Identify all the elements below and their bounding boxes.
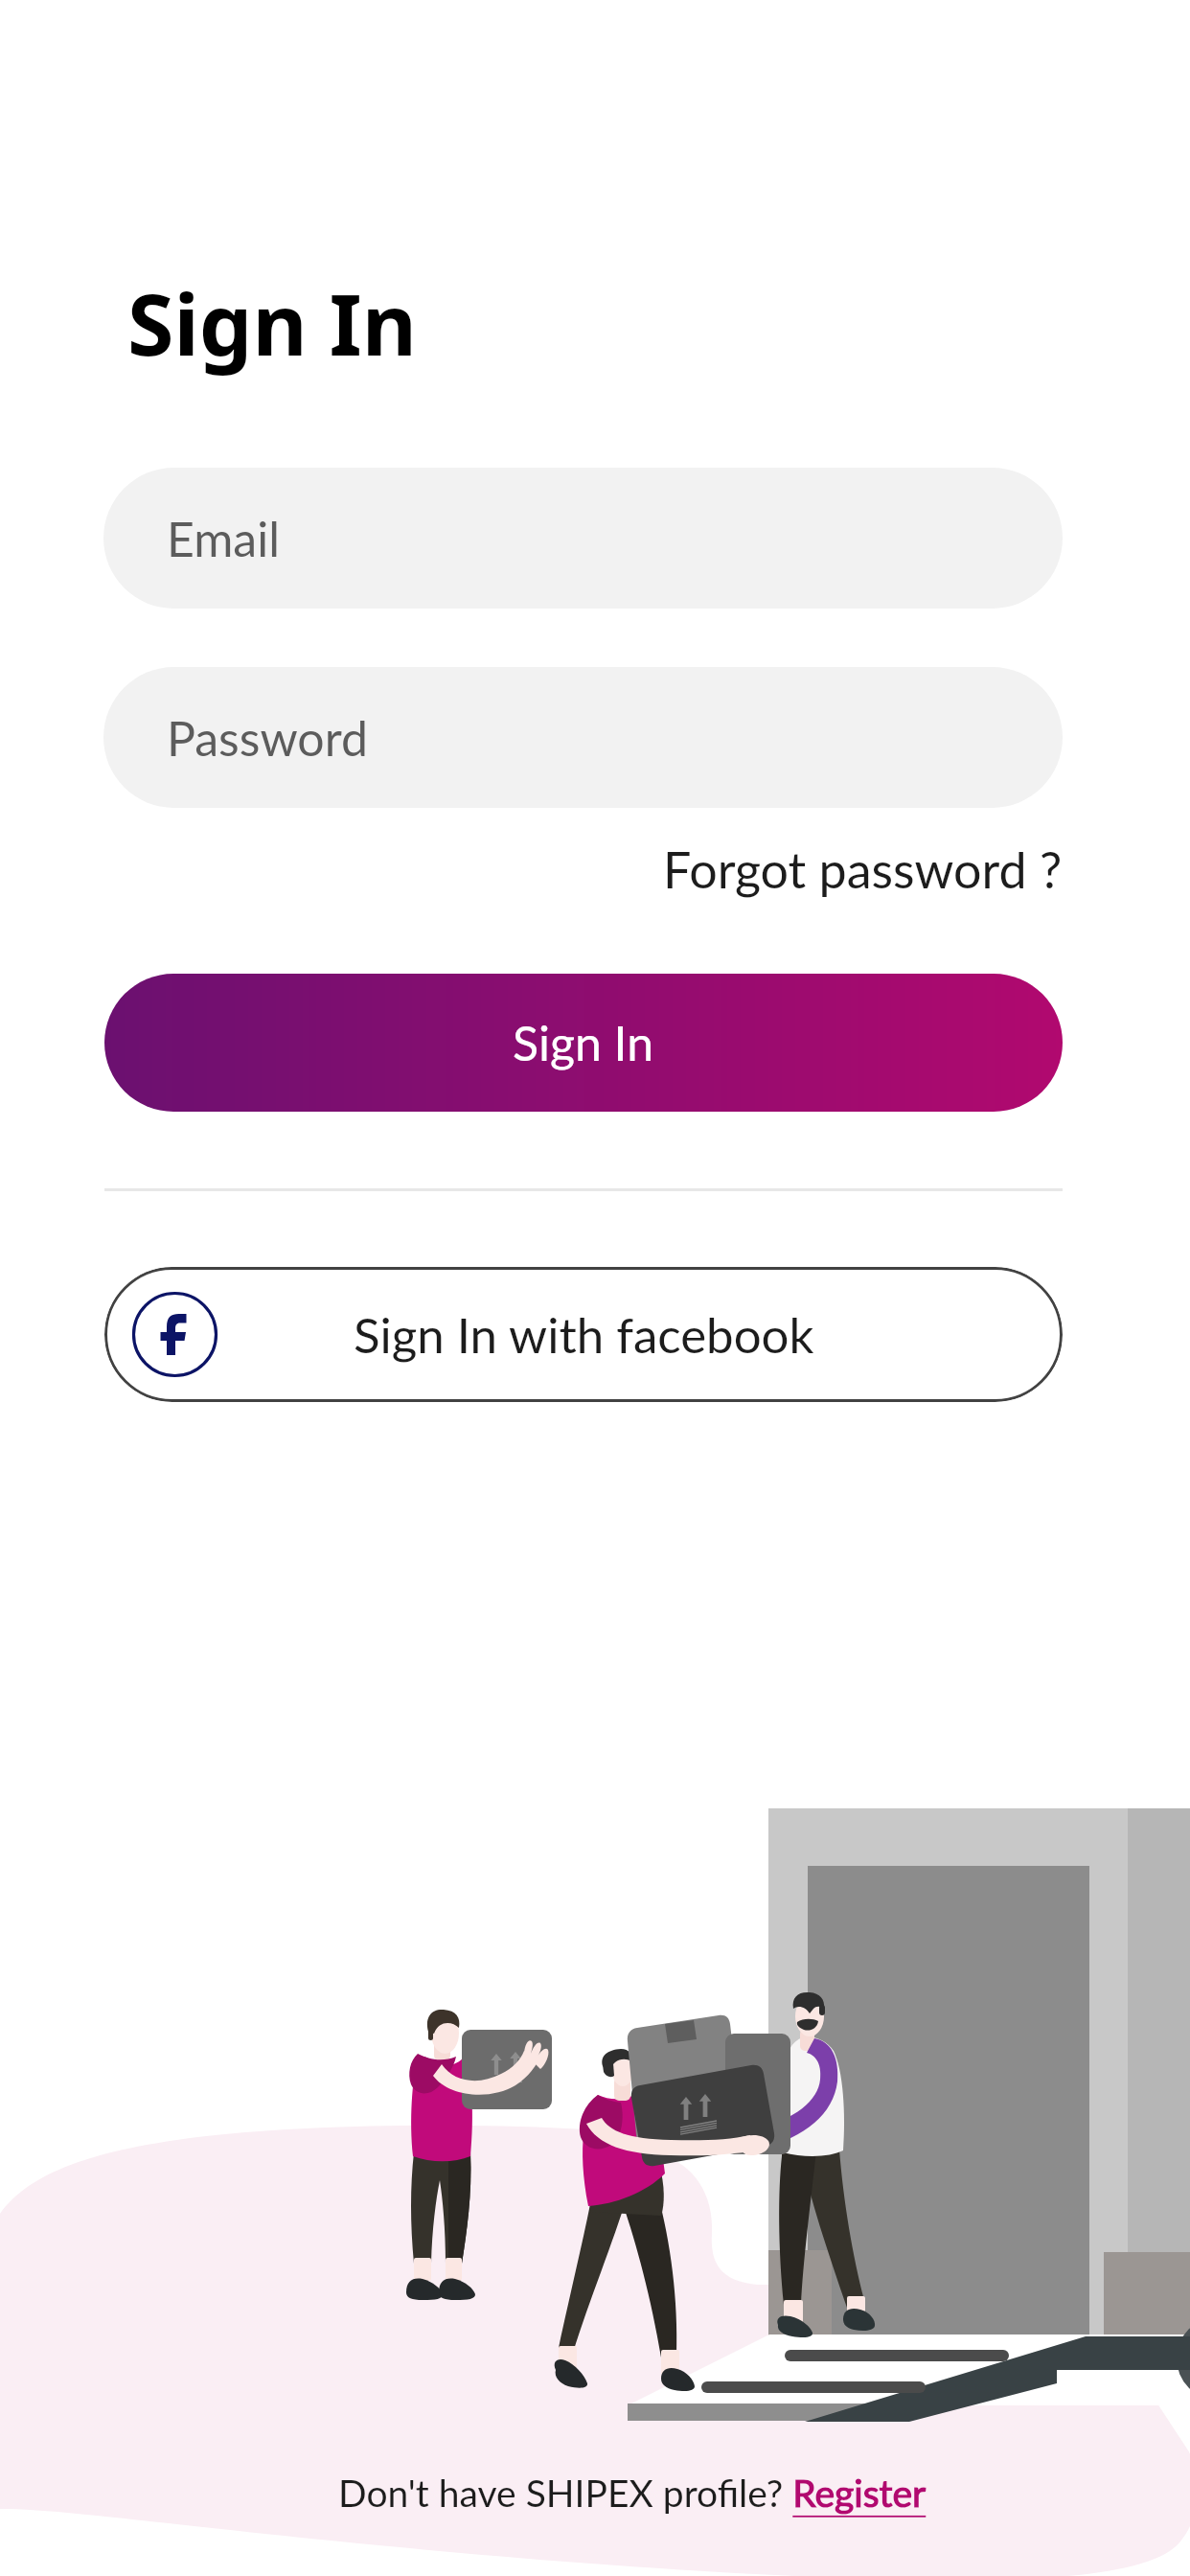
button[interactable]: Sign In with facebook bbox=[104, 1267, 1063, 1402]
staticText: Don't have SHIPEX profile? Register bbox=[338, 2471, 927, 2516]
staticText: Email bbox=[167, 510, 280, 567]
staticText: Sign In with facebook bbox=[354, 1305, 814, 1364]
button[interactable]: Sign In bbox=[104, 974, 1063, 1112]
button[interactable]: Password bbox=[103, 667, 1063, 808]
button[interactable]: Email bbox=[103, 468, 1063, 609]
staticText: Password bbox=[167, 709, 368, 767]
button[interactable]: Forgot password ? bbox=[663, 832, 1063, 907]
staticText: Sign In bbox=[127, 265, 417, 380]
button[interactable]: Don't have SHIPEX profile? Register bbox=[338, 2471, 927, 2516]
staticText: Sign In bbox=[513, 1014, 654, 1071]
other: Sign In with facebook bbox=[132, 1292, 217, 1377]
